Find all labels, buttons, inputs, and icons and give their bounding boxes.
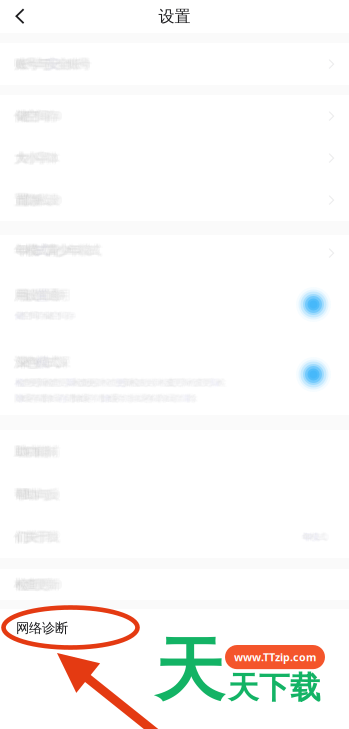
button[interactable]: 深: [0, 329, 349, 415]
staticText: 存: [38, 310, 47, 321]
button[interactable]: Back: [0, 1, 39, 32]
button[interactable]: 年: [0, 235, 349, 271]
staticText: 用: [55, 286, 68, 303]
staticText: 更: [117, 377, 126, 389]
staticText: 存: [58, 392, 67, 403]
staticText: 缓: [136, 393, 145, 404]
staticText: 私: [36, 191, 49, 207]
staticText: 青: [46, 242, 59, 258]
staticText: 除: [101, 393, 110, 404]
staticText: 深: [16, 353, 29, 370]
staticText: 空: [52, 310, 61, 321]
staticText: 储: [16, 310, 25, 322]
staticText: 储: [13, 109, 26, 125]
staticText: 存: [48, 109, 61, 125]
staticText: 间: [36, 109, 49, 125]
button[interactable]: 助: [0, 430, 349, 473]
staticText: 存: [116, 393, 125, 404]
button[interactable]: 账: [0, 43, 349, 85]
staticText: 查: [52, 377, 61, 388]
staticText: 清: [152, 393, 161, 405]
staticText: 检: [158, 376, 167, 388]
staticText: 存: [57, 393, 66, 405]
staticText: 式: [37, 241, 50, 258]
staticText: 新: [182, 376, 191, 388]
staticText: 关: [27, 528, 40, 544]
staticText: 检: [16, 576, 29, 593]
staticText: 新: [151, 377, 160, 388]
staticText: 存: [116, 393, 125, 405]
staticText: 查: [50, 377, 59, 389]
staticText: 清: [151, 392, 160, 403]
staticText: 新: [95, 376, 104, 388]
staticText: 年: [303, 531, 312, 543]
button[interactable]: 们: [0, 516, 349, 558]
staticText: 设: [27, 288, 40, 304]
staticText: 除: [74, 393, 83, 404]
staticText: 反: [48, 485, 61, 502]
staticText: 模: [36, 353, 49, 370]
staticText: 存: [117, 393, 126, 405]
button[interactable]: 大: [0, 137, 349, 179]
button[interactable]: 检: [0, 569, 349, 600]
staticText: 用: [13, 288, 26, 304]
staticText: 私: [36, 192, 49, 208]
button[interactable]: 帮: [0, 473, 349, 516]
staticText: 间: [59, 309, 68, 321]
staticText: 除: [101, 392, 110, 403]
staticText: 字: [34, 151, 47, 167]
staticText: 检: [189, 377, 198, 389]
staticText: 新: [66, 376, 75, 388]
staticText: 间: [57, 310, 66, 322]
staticText: 除: [102, 393, 111, 404]
staticText: 少: [58, 243, 71, 259]
staticText: 检: [130, 377, 139, 389]
staticText: 储: [15, 108, 28, 124]
staticText: 安: [45, 56, 58, 72]
staticText: 清: [94, 392, 103, 403]
staticText: 模: [311, 532, 320, 543]
staticText: 更: [146, 376, 155, 388]
staticText: 模: [309, 532, 318, 543]
staticText: 字: [37, 149, 50, 165]
staticText: 缓: [109, 393, 118, 405]
staticText: 关: [27, 529, 40, 545]
staticText: 缓: [81, 393, 90, 405]
staticText: 网络诊断: [16, 620, 68, 636]
staticText: 检: [15, 577, 28, 593]
staticText: 设: [46, 193, 59, 209]
staticText: 反: [45, 487, 58, 503]
staticText: 帮: [16, 487, 29, 503]
button[interactable]: 用: [0, 271, 349, 329]
staticText: 更: [115, 377, 124, 389]
staticText: 体: [46, 151, 59, 167]
staticText: 缓: [167, 393, 176, 405]
staticText: 安: [46, 56, 59, 72]
staticText: 模: [78, 242, 91, 258]
staticText: 帮: [16, 486, 29, 503]
staticText: 与: [34, 485, 47, 502]
staticText: 更: [202, 377, 211, 389]
button[interactable]: 置: [0, 179, 349, 221]
staticText: 清: [153, 393, 162, 405]
staticText: 检: [74, 377, 83, 389]
staticText: 查: [110, 377, 119, 388]
staticText: 间: [36, 108, 49, 124]
staticText: 查: [50, 376, 59, 388]
staticText: 除: [73, 393, 82, 405]
staticText: 检: [216, 377, 225, 388]
staticText: 存: [64, 309, 73, 321]
staticText: 存: [64, 310, 73, 322]
staticText: 更: [57, 377, 66, 388]
staticText: 式: [88, 241, 101, 258]
staticText: 与: [37, 57, 50, 73]
button[interactable]: 网络诊断: [0, 609, 349, 647]
staticText: 能: [34, 442, 47, 459]
staticText: 体: [45, 151, 58, 167]
staticText: 查: [79, 377, 88, 389]
staticText: 存: [173, 393, 182, 404]
staticText: 缓: [79, 393, 88, 404]
staticText: 存: [145, 393, 154, 404]
staticText: 小: [24, 149, 37, 165]
button[interactable]: 储: [0, 95, 349, 137]
